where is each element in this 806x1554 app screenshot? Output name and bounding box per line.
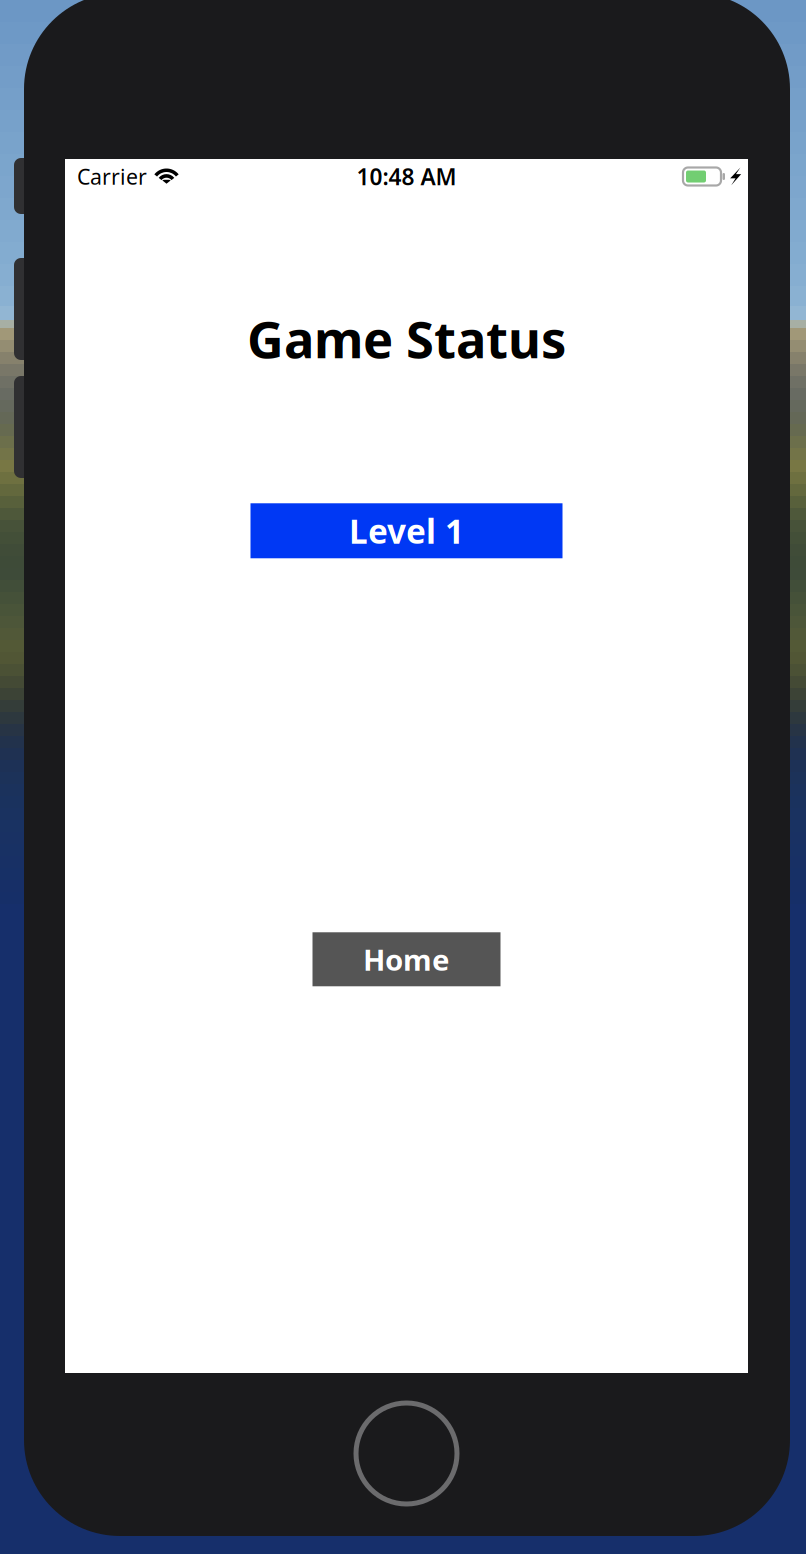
staticText: Home (363, 940, 450, 979)
staticText: Carrier (77, 162, 147, 191)
staticText: Game Status (247, 305, 566, 372)
button[interactable]: Home (312, 932, 500, 986)
button[interactable]: Level 1 (250, 503, 562, 558)
staticText: Level 1 (349, 509, 464, 553)
staticText: 10:48 AM (356, 161, 456, 191)
